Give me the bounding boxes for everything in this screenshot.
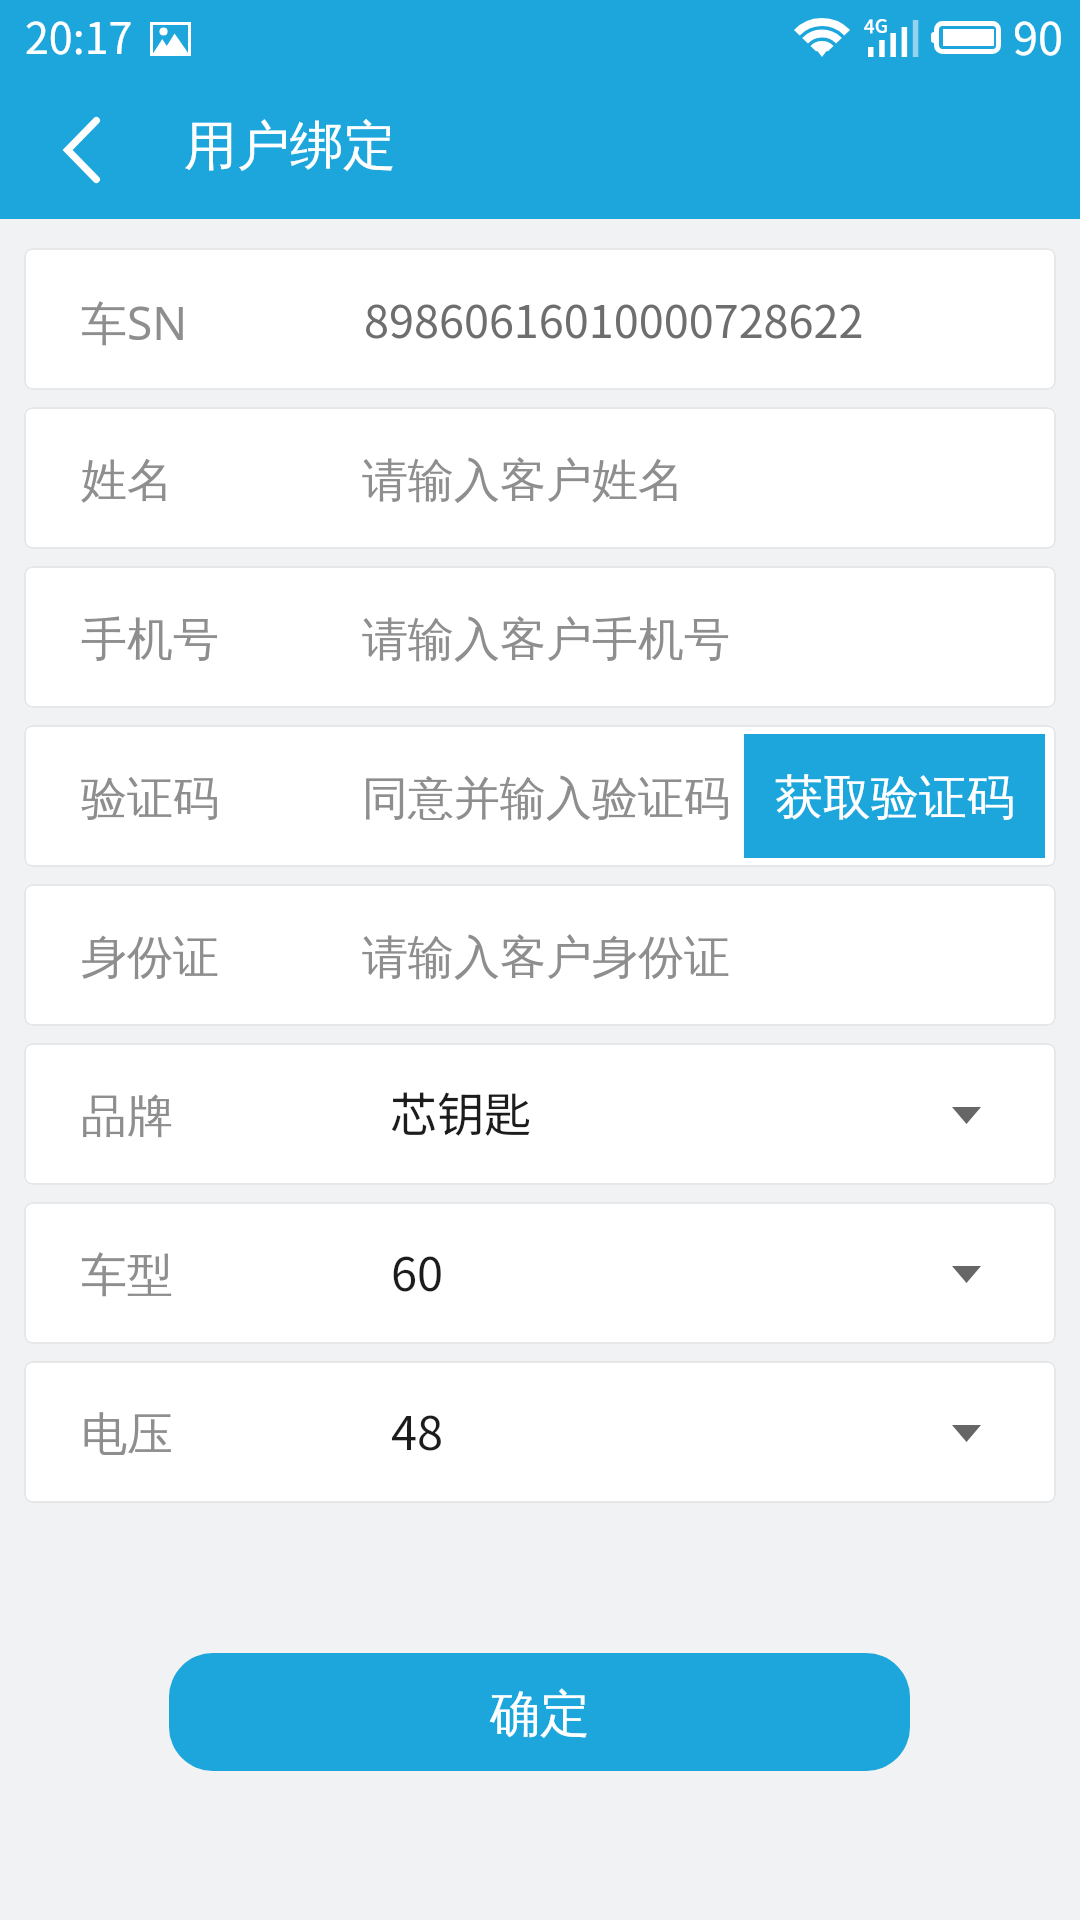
staticText: 姓名 xyxy=(81,452,173,510)
staticText: 4G xyxy=(864,11,889,39)
staticText: 手机号 xyxy=(81,611,219,669)
button[interactable]: 姓名 xyxy=(24,407,1056,549)
button[interactable]: 手机号 xyxy=(24,566,1056,708)
button[interactable]: Back xyxy=(27,80,137,219)
button[interactable]: 获取验证码 xyxy=(744,734,1045,858)
button[interactable]: 身份证 xyxy=(24,884,1056,1026)
staticText: 同意并输入验证码 xyxy=(362,770,730,828)
button[interactable]: 确定 xyxy=(169,1653,910,1771)
staticText: 确定 xyxy=(490,1683,590,1746)
button[interactable]: 验证码 xyxy=(24,725,1056,867)
staticText: 89860616010000728622 xyxy=(364,286,864,351)
button[interactable]: 车型 xyxy=(24,1202,1056,1344)
staticText: 48 xyxy=(391,1395,444,1463)
staticText: 20:17 xyxy=(25,4,133,66)
button[interactable]: 品牌 xyxy=(24,1043,1056,1185)
staticText: 芯钥匙 xyxy=(390,1077,531,1145)
staticText: 获取验证码 xyxy=(775,768,1015,828)
staticText: 60 xyxy=(391,1236,444,1304)
staticText: 身份证 xyxy=(81,929,219,987)
staticText: 电压 xyxy=(81,1406,173,1464)
staticText: 请输入客户身份证 xyxy=(362,929,730,987)
staticText: 90 xyxy=(1013,3,1063,68)
staticText: 车SN xyxy=(81,291,188,354)
staticText: 请输入客户手机号 xyxy=(362,611,730,669)
staticText: 车型 xyxy=(81,1247,173,1305)
staticText: 品牌 xyxy=(81,1088,173,1146)
staticText: 请输入客户姓名 xyxy=(362,452,684,510)
button[interactable]: 车SN xyxy=(24,248,1056,390)
staticText: 验证码 xyxy=(81,770,219,828)
button[interactable]: 电压 xyxy=(24,1361,1056,1503)
staticText: 用户绑定 xyxy=(184,113,396,180)
